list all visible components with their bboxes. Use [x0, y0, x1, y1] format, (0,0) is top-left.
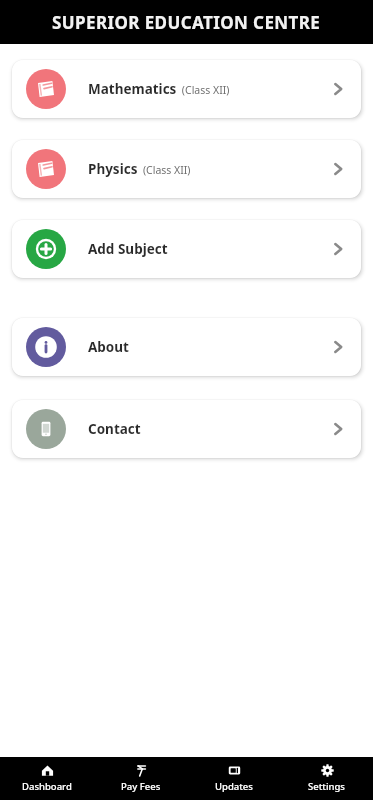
button[interactable]: Add Subject — [12, 220, 361, 278]
button[interactable]: Updates — [187, 757, 280, 800]
staticText: Dashboard — [22, 780, 72, 793]
staticText: Mathematics (Class XII) — [88, 80, 230, 98]
staticText: Physics (Class XII) — [88, 160, 191, 178]
staticText: About — [88, 338, 129, 356]
button[interactable]: Mathematics (Class XII) — [12, 60, 361, 118]
staticText: Updates — [215, 780, 253, 793]
other: Dashboard — [41, 764, 54, 777]
button[interactable]: Settings — [280, 757, 373, 800]
staticText: Contact — [88, 420, 141, 438]
staticText: Settings — [308, 780, 345, 793]
staticText: Pay Fees — [121, 780, 161, 793]
button[interactable]: Contact — [12, 400, 361, 458]
button[interactable]: Pay Fees — [94, 757, 187, 800]
staticText: SUPERIOR EDUCATION CENTRE — [52, 11, 321, 34]
button[interactable]: About — [12, 318, 361, 376]
other: Pay Fees — [135, 764, 148, 777]
button[interactable]: Dashboard — [0, 757, 94, 800]
button[interactable]: Physics (Class XII) — [12, 140, 361, 198]
other: Settings — [321, 764, 334, 777]
staticText: Add Subject — [88, 240, 168, 258]
other: Updates — [228, 764, 241, 777]
